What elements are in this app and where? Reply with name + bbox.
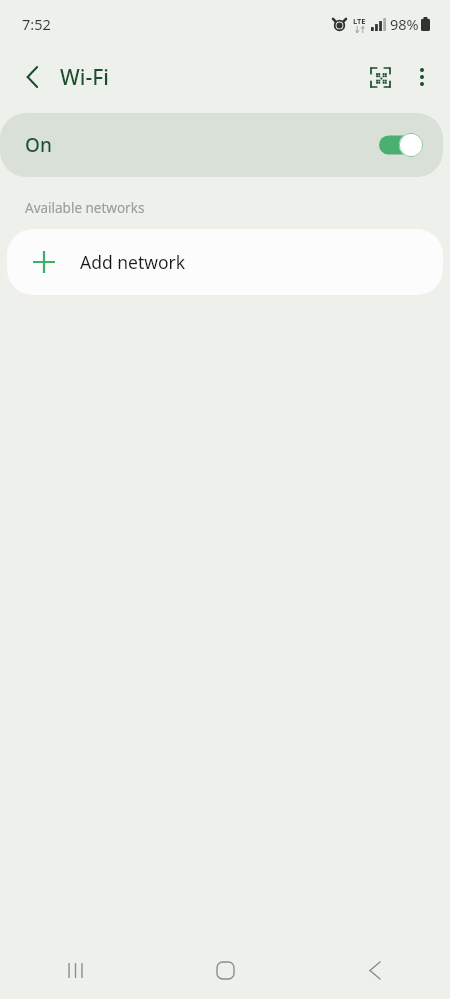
button[interactable]: Home [150,941,300,999]
button[interactable]: Back [300,941,450,999]
staticText: Available networks [25,199,145,217]
button[interactable]: More options [402,57,442,97]
button[interactable]: Recent apps [0,941,150,999]
staticText: 98% [390,14,419,34]
staticText: 7:52 [22,14,51,34]
button[interactable]: On [0,113,443,177]
staticText: Add network [80,250,186,274]
staticText: LTE [353,16,366,26]
other: Back [14,59,50,95]
button[interactable]: Scan QR code [358,55,402,99]
staticText: Wi-Fi [60,63,109,92]
button[interactable]: Add network [7,229,443,295]
staticText: On [25,132,52,158]
button[interactable]: Back [14,59,109,95]
